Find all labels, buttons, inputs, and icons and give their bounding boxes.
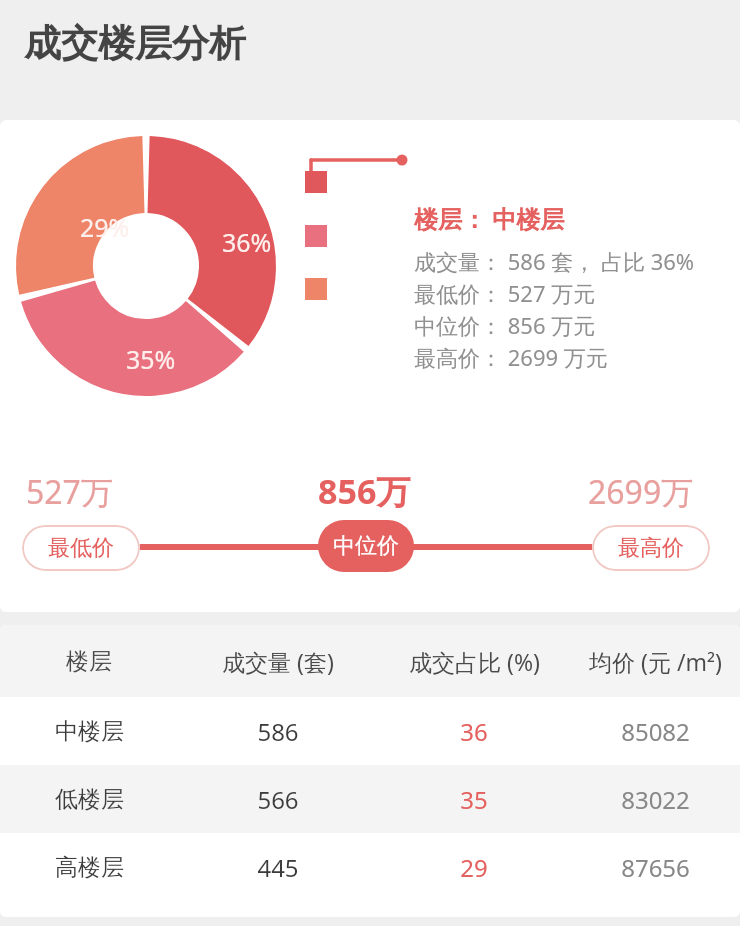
staticText: 中位价	[333, 532, 399, 560]
staticText: 83022	[621, 783, 690, 816]
button[interactable]: 中楼层	[0, 697, 740, 765]
staticText: 成交楼层分析	[24, 20, 246, 67]
staticText: 成交占比 (%)	[409, 646, 540, 677]
staticText: 成交量 (套)	[222, 646, 334, 677]
staticText: 527万	[26, 470, 113, 514]
staticText: 445	[257, 851, 299, 884]
other: 成交楼层占比环形图	[0, 120, 740, 612]
staticText: 成交量： 586 套， 占比 36%	[414, 246, 695, 276]
staticText: 35	[460, 783, 488, 816]
staticText: 29	[460, 851, 488, 884]
staticText: 最低价	[48, 534, 114, 562]
button[interactable]: 低楼层	[0, 765, 740, 833]
staticText: 最高价： 2699 万元	[414, 342, 608, 372]
staticText: 2699万	[588, 470, 694, 514]
staticText: 36	[460, 715, 488, 748]
button[interactable]: 最低价	[22, 525, 140, 571]
staticText: 楼层： 中楼层	[414, 202, 565, 235]
staticText: 楼层	[66, 647, 112, 676]
staticText: 87656	[621, 851, 690, 884]
staticText: 最高价	[618, 534, 684, 562]
button[interactable]: 高楼层	[0, 833, 740, 901]
staticText: 856万	[318, 468, 411, 514]
staticText: 中位价： 856 万元	[414, 310, 596, 340]
staticText: 高楼层	[55, 853, 124, 882]
staticText: 566	[257, 783, 299, 816]
button[interactable]: 最高价	[592, 525, 710, 571]
staticText: 35%	[126, 342, 176, 376]
staticText: 36%	[222, 225, 272, 259]
staticText: 586	[257, 715, 299, 748]
staticText: 29%	[80, 210, 130, 244]
staticText: 均价 (元 /m²)	[589, 646, 722, 677]
staticText: 85082	[621, 715, 690, 748]
staticText: 低楼层	[55, 785, 124, 814]
button[interactable]: 中位价	[318, 520, 414, 572]
staticText: 中楼层	[55, 717, 124, 746]
staticText: 最低价： 527 万元	[414, 278, 596, 308]
